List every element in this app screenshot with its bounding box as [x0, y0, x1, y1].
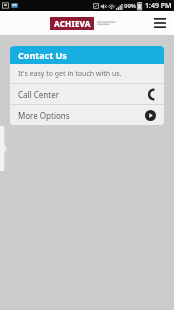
staticText: Call Center: [18, 89, 59, 100]
button[interactable]: More options: [10, 105, 164, 125]
button[interactable]: Achieva home: [50, 17, 117, 30]
staticText: 99%: [124, 2, 136, 10]
staticText: 1:49 PM: [145, 1, 172, 11]
button[interactable]: Call: [10, 84, 164, 104]
staticText: ACHIEVA: [54, 18, 91, 29]
button[interactable]: Contact Us: [10, 46, 164, 64]
staticText: Contact Us: [18, 49, 67, 61]
staticText: It's easy to get in touch with us.: [18, 69, 122, 79]
button[interactable]: Open navigation menu: [151, 14, 169, 32]
button[interactable]: Open side drawer: [0, 126, 7, 171]
staticText: More Options: [18, 110, 70, 121]
